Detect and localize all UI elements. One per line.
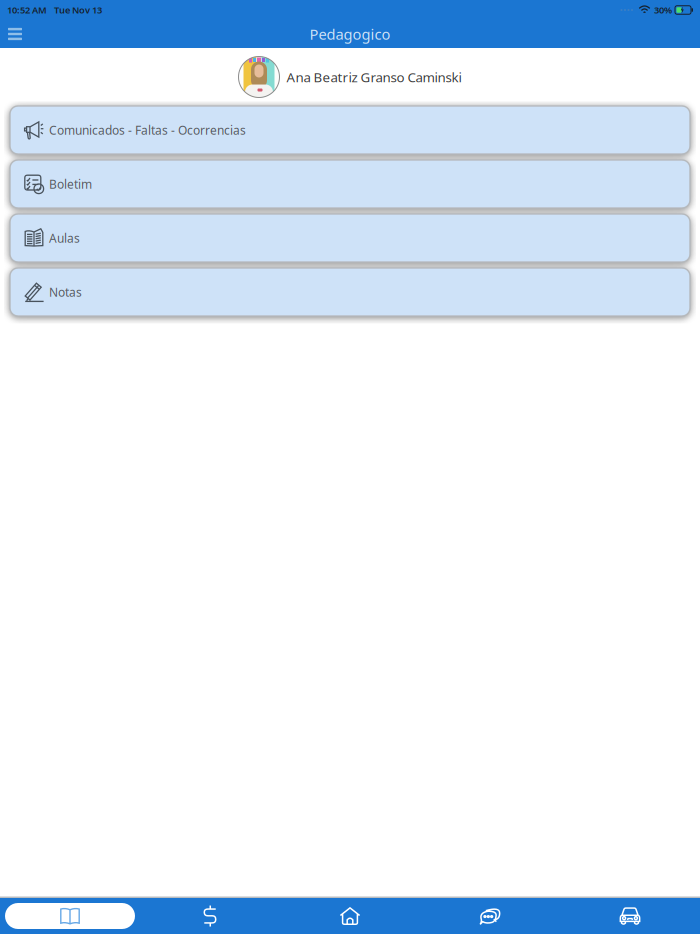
- staticText: 10:52 AM: [7, 4, 47, 16]
- staticText: Pedagogico: [309, 24, 390, 44]
- button[interactable]: Menu: [0, 20, 30, 48]
- staticText: Tue Nov 13: [54, 4, 102, 16]
- button[interactable]: Mensagens: [420, 898, 560, 934]
- staticText: 30%: [654, 4, 672, 16]
- button[interactable]: Financeiro: [140, 898, 280, 934]
- staticText: Notas: [49, 284, 82, 300]
- button[interactable]: Comunicados - Faltas - Ocorrencias: [10, 106, 690, 154]
- button[interactable]: Boletim: [10, 160, 690, 208]
- button[interactable]: Aulas: [10, 214, 690, 262]
- staticText: Ana Beatriz Granso Caminski: [286, 68, 461, 86]
- staticText: Aulas: [49, 230, 80, 246]
- button[interactable]: Transporte: [560, 898, 700, 934]
- button[interactable]: Agenda: [0, 898, 140, 934]
- staticText: Comunicados - Faltas - Ocorrencias: [49, 122, 246, 138]
- button[interactable]: Inicio: [280, 898, 420, 934]
- staticText: Boletim: [49, 176, 92, 192]
- button[interactable]: Notas: [10, 268, 690, 316]
